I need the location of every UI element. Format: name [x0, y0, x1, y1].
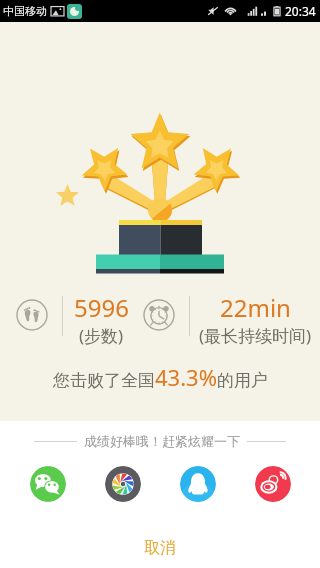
staticText: 取消 — [144, 538, 176, 558]
staticText: (最长持续时间) — [199, 324, 312, 347]
staticText: (步数) — [79, 324, 124, 347]
staticText: 中国移动 — [3, 4, 47, 18]
button[interactable]: Share to WeChat Moments — [105, 466, 141, 502]
staticText: 您击败了全国43.3%的用户 — [53, 362, 268, 392]
staticText: 成绩好棒哦！赶紧炫耀一下 — [84, 433, 240, 449]
button[interactable]: Share to Weibo — [255, 466, 291, 502]
staticText: 5996 — [74, 291, 129, 324]
button[interactable]: Share to QQ — [180, 466, 216, 502]
button[interactable]: 取消 — [0, 531, 320, 565]
staticText: 22min — [220, 291, 291, 324]
button[interactable]: Share to WeChat — [30, 466, 66, 502]
staticText: 20:34 — [285, 3, 316, 19]
